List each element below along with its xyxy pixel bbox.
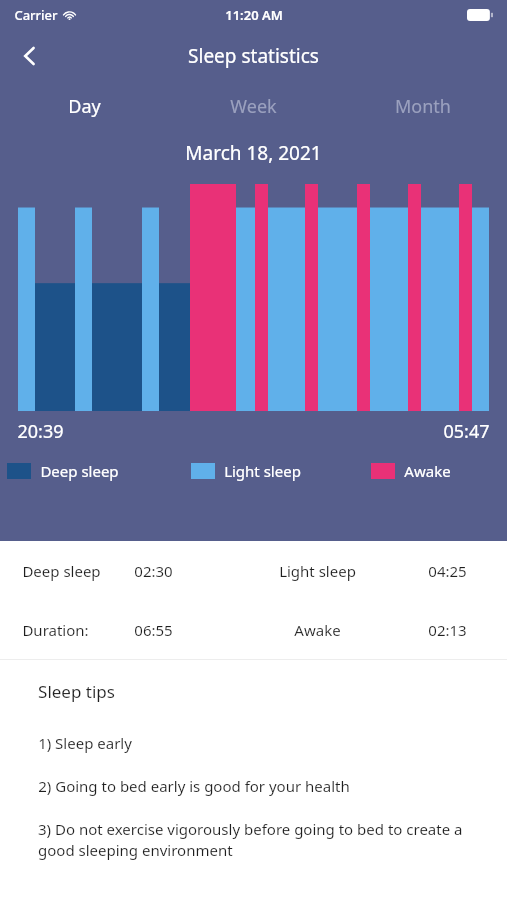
staticText: 02:13: [428, 620, 467, 640]
staticText: Sleep statistics: [188, 43, 319, 69]
staticText: 3) Do not exercise vigorously before goi…: [38, 819, 483, 861]
staticText: Deep sleep: [22, 561, 101, 581]
button[interactable]: Day: [0, 82, 169, 130]
staticText: 04:25: [428, 561, 467, 581]
button[interactable]: Week: [169, 82, 338, 130]
button[interactable]: Awake: [371, 461, 451, 481]
button[interactable]: Back: [8, 34, 52, 78]
staticText: Duration:: [22, 620, 89, 640]
staticText: March 18, 2021: [185, 140, 322, 166]
staticText: Week: [230, 94, 277, 119]
staticText: 20:39: [17, 419, 64, 444]
staticText: 05:47: [443, 419, 490, 444]
button[interactable]: Duration:: [0, 600, 507, 659]
staticText: Awake: [294, 620, 341, 640]
staticText: 06:55: [134, 620, 173, 640]
staticText: Light sleep: [224, 461, 301, 481]
staticText: 02:30: [134, 561, 173, 581]
staticText: Month: [395, 94, 451, 119]
staticText: Awake: [404, 461, 451, 481]
staticText: Carrier: [14, 6, 58, 24]
staticText: Light sleep: [279, 561, 356, 581]
staticText: Sleep tips: [38, 680, 115, 703]
button[interactable]: Light sleep: [191, 461, 301, 481]
staticText: 11:20 AM: [225, 6, 283, 24]
staticText: 2) Going to bed early is good for your h…: [38, 776, 350, 796]
staticText: Day: [68, 94, 101, 119]
button[interactable]: Deep sleep: [0, 541, 507, 600]
staticText: 1) Sleep early: [38, 733, 132, 753]
button[interactable]: Month: [338, 82, 507, 130]
staticText: Deep sleep: [40, 461, 119, 481]
button[interactable]: Deep sleep: [7, 461, 119, 481]
